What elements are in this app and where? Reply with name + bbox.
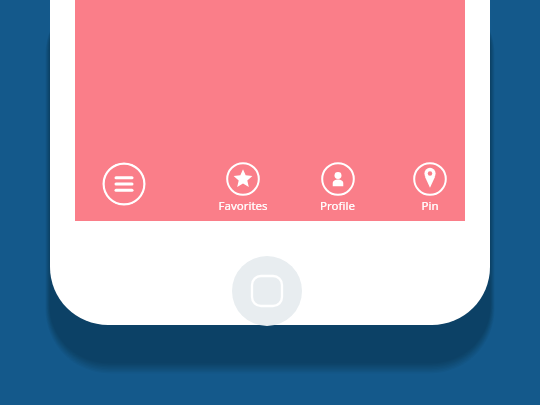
staticText: Profile [320, 198, 355, 214]
button[interactable]: Menu [102, 162, 146, 206]
staticText: Favorites [218, 198, 268, 214]
button[interactable]: Home [232, 256, 302, 326]
button[interactable]: Profile [298, 162, 376, 218]
staticText: Pin [421, 198, 439, 214]
button[interactable]: Favorites [204, 162, 282, 218]
button[interactable]: Pin [391, 162, 469, 218]
